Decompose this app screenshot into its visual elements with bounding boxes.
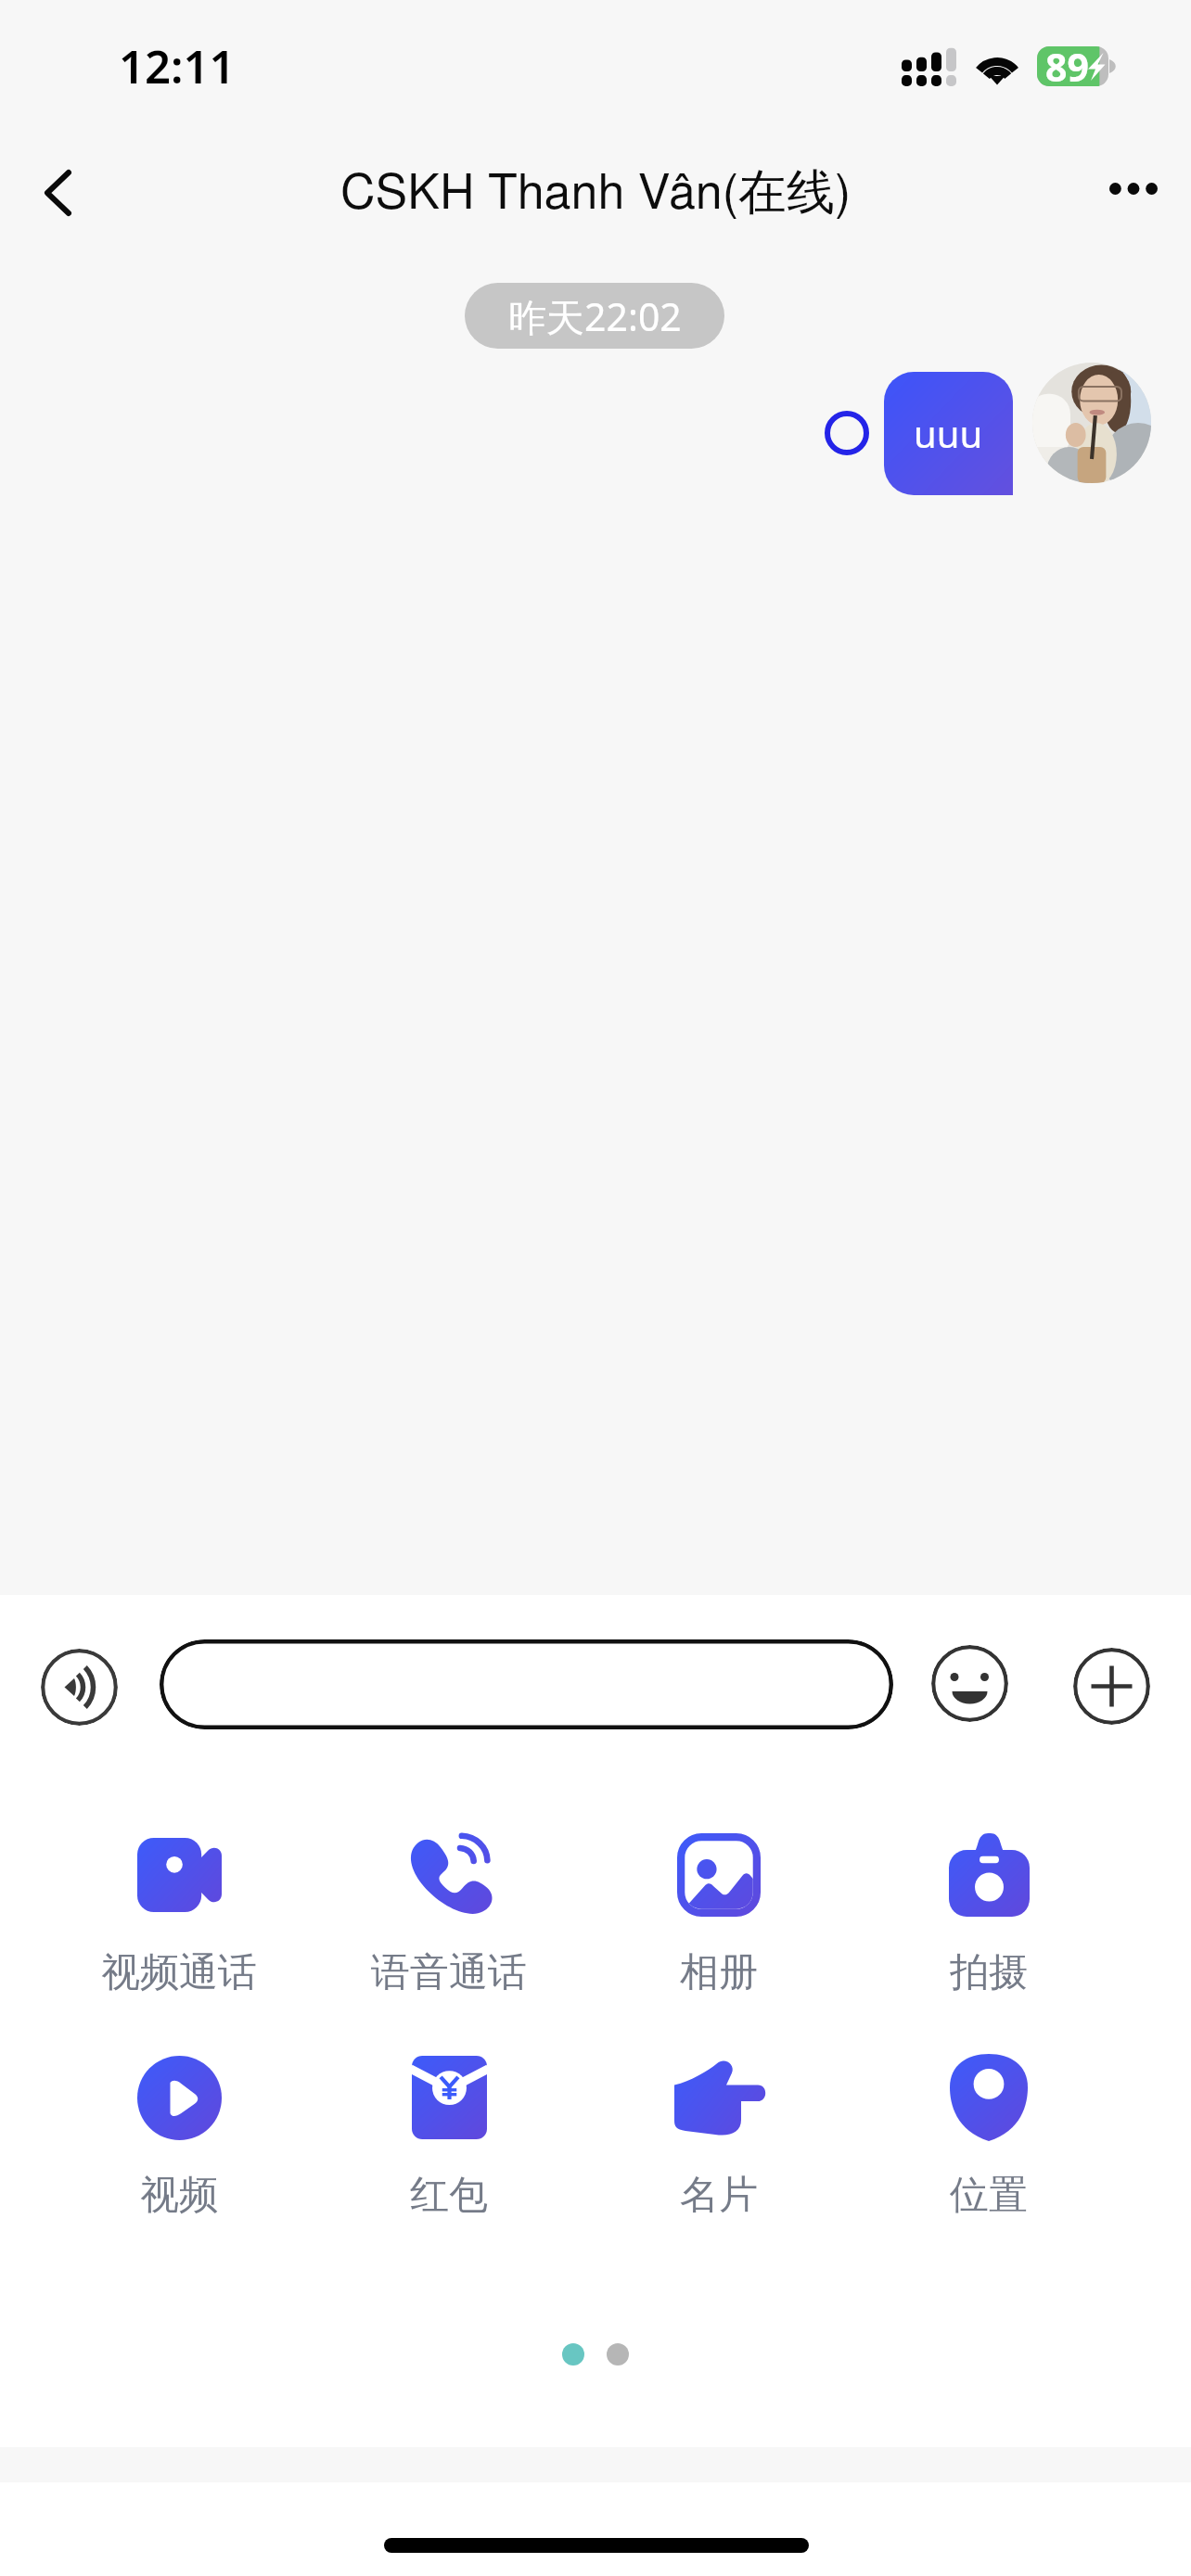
button[interactable]: 位置 bbox=[896, 2040, 1082, 2216]
button[interactable]: Back bbox=[9, 145, 106, 241]
staticText: uuu bbox=[914, 408, 983, 458]
button[interactable]: 红包 bbox=[356, 2040, 542, 2216]
staticText: 红包 bbox=[410, 2171, 488, 2219]
button[interactable]: Emoji bbox=[931, 1645, 1008, 1722]
staticText: 视频通话 bbox=[101, 1948, 257, 1996]
button[interactable]: 视频 bbox=[86, 2040, 272, 2216]
staticText: 语音通话 bbox=[371, 1948, 527, 1996]
staticText: 昨天22:02 bbox=[508, 290, 682, 342]
button[interactable]: 名片 bbox=[626, 2040, 812, 2216]
button[interactable] bbox=[160, 1639, 893, 1729]
staticText: CSKH Thanh Vân(在线) bbox=[340, 153, 852, 223]
button[interactable]: 视频通话 bbox=[86, 1817, 272, 1994]
staticText: 拍摄 bbox=[950, 1948, 1028, 1996]
button[interactable]: 拍摄 bbox=[896, 1817, 1082, 1994]
button[interactable]: Voice message bbox=[41, 1649, 118, 1726]
staticText: 名片 bbox=[680, 2171, 758, 2219]
staticText: 视频 bbox=[140, 2171, 218, 2219]
button[interactable]: More options bbox=[1085, 140, 1182, 236]
button[interactable]: More actions bbox=[1073, 1648, 1150, 1725]
staticText: 89 bbox=[1045, 41, 1089, 93]
staticText: 12:11 bbox=[119, 35, 236, 97]
button[interactable]: 相册 bbox=[626, 1817, 812, 1994]
button[interactable]: 语音通话 bbox=[356, 1817, 542, 1994]
staticText: 位置 bbox=[950, 2171, 1028, 2219]
staticText: 相册 bbox=[680, 1948, 758, 1996]
